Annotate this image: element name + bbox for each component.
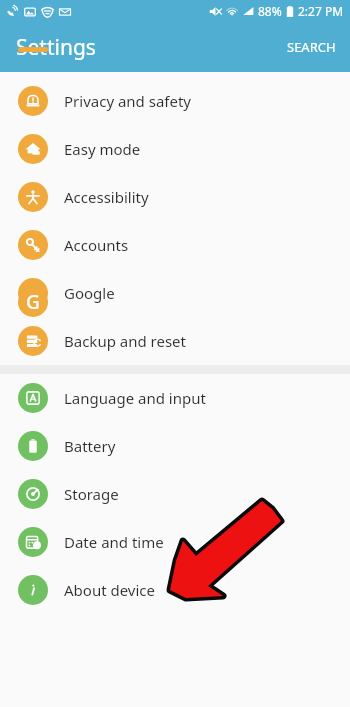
staticText: Backup and reset xyxy=(64,331,186,351)
staticText: Date and time xyxy=(64,532,164,552)
button[interactable]: Date and time xyxy=(0,518,350,566)
staticText: Settings xyxy=(16,33,96,62)
staticText: 2:27 PM xyxy=(298,3,344,19)
staticText: G xyxy=(26,289,40,315)
staticText: Battery xyxy=(64,436,116,456)
staticText: About device xyxy=(64,580,156,600)
button[interactable]: SEARCH xyxy=(287,38,336,56)
staticText: Storage xyxy=(64,484,119,504)
button[interactable]: Storage xyxy=(0,470,350,518)
button[interactable]: About device xyxy=(0,566,350,614)
staticText: Accounts xyxy=(64,235,129,255)
other: Annotation arrow pointing to About devic… xyxy=(0,0,350,707)
button[interactable]: Google xyxy=(0,269,350,317)
button[interactable]: Privacy and safety xyxy=(0,77,350,125)
button[interactable]: Accounts xyxy=(0,221,350,269)
staticText: Google xyxy=(64,283,115,303)
staticText: Language and input xyxy=(64,388,206,408)
button[interactable]: Battery xyxy=(0,422,350,470)
button[interactable]: Accessibility xyxy=(0,173,350,221)
staticText: Privacy and safety xyxy=(64,91,192,111)
button[interactable]: Settings xyxy=(16,33,96,62)
button[interactable]: Backup and reset xyxy=(0,317,350,365)
button[interactable]: Easy mode xyxy=(0,125,350,173)
staticText: SEARCH xyxy=(287,38,336,56)
staticText: 88% xyxy=(258,3,282,19)
staticText: Accessibility xyxy=(64,187,149,207)
staticText: Easy mode xyxy=(64,139,141,159)
button[interactable]: Language and input xyxy=(0,374,350,422)
